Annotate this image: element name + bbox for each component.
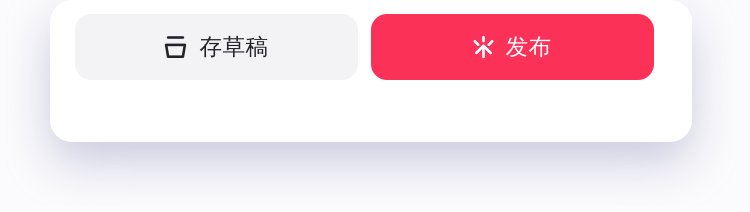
staticText: 发布	[505, 33, 551, 61]
button[interactable]: 存草稿	[75, 14, 358, 80]
button[interactable]: 发布	[371, 14, 654, 80]
staticText: 存草稿	[199, 33, 268, 61]
